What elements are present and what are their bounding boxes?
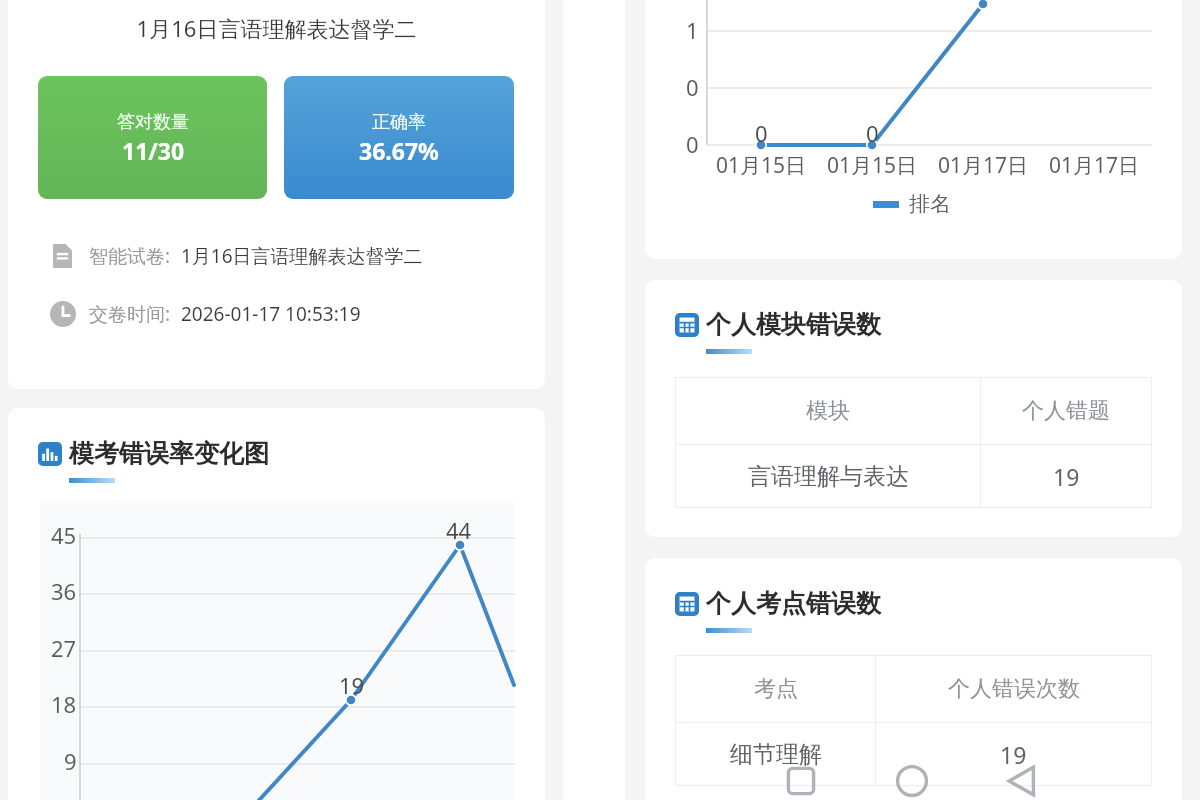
staticText: 交卷时间: — [89, 301, 171, 327]
staticText: 19 — [339, 670, 365, 700]
staticText: 01月17日 — [1049, 151, 1140, 180]
staticText: 模块 — [806, 397, 850, 425]
button[interactable]: 正确率 — [284, 76, 514, 199]
staticText: 正确率 — [372, 111, 426, 134]
staticText: 1月16日言语理解表达督学二 — [8, 13, 545, 43]
staticText: 11/30 — [122, 135, 185, 166]
staticText: 个人考点错误数 — [706, 588, 881, 619]
staticText: 19 — [1053, 461, 1080, 492]
staticText: 个人错误次数 — [948, 675, 1080, 703]
staticText: 2026-01-17 10:53:19 — [181, 301, 361, 327]
staticText: 27 — [51, 633, 77, 663]
staticText: 36 — [51, 576, 77, 606]
staticText: 01月15日 — [716, 151, 807, 180]
staticText: 细节理解 — [730, 740, 822, 769]
staticText: 模考错误率变化图 — [69, 438, 269, 469]
staticText: 44 — [446, 515, 472, 545]
staticText: 考点 — [754, 675, 798, 703]
button[interactable]: 1 — [645, 0, 1182, 259]
staticText: 9 — [64, 746, 77, 776]
staticText: 36.67% — [359, 135, 439, 166]
staticText: 答对数量 — [117, 111, 189, 134]
staticText: 智能试卷: — [89, 243, 171, 269]
staticText: 0 — [686, 72, 699, 102]
button[interactable]: 答对数量 — [38, 76, 267, 199]
staticText: 18 — [51, 689, 77, 719]
staticText: 0 — [755, 118, 768, 148]
staticText: 01月17日 — [938, 151, 1029, 180]
staticText: 45 — [51, 520, 77, 550]
other: Submit time — [50, 301, 76, 327]
button[interactable]: Back — [1005, 764, 1039, 798]
staticText: 0 — [686, 129, 699, 159]
button[interactable]: 个人模块错误数 — [645, 280, 1182, 537]
staticText: 个人错题 — [1022, 397, 1110, 425]
staticText: 1 — [686, 15, 699, 45]
button[interactable]: Recent apps — [784, 764, 818, 798]
staticText: 言语理解与表达 — [748, 462, 909, 491]
button[interactable]: 1月16日言语理解表达督学二 — [8, 0, 545, 389]
staticText: 排名 — [909, 191, 951, 217]
staticText: 个人模块错误数 — [706, 309, 881, 340]
staticText: 19 — [1000, 739, 1027, 770]
staticText: 0 — [866, 118, 879, 148]
button[interactable]: 模考错误率变化图 — [8, 408, 545, 800]
button[interactable]: 个人考点错误数 — [645, 558, 1182, 800]
button[interactable]: Home — [895, 764, 929, 798]
other: Exam paper — [53, 244, 72, 268]
staticText: 1月16日言语理解表达督学二 — [181, 243, 423, 269]
staticText: 01月15日 — [827, 151, 918, 180]
